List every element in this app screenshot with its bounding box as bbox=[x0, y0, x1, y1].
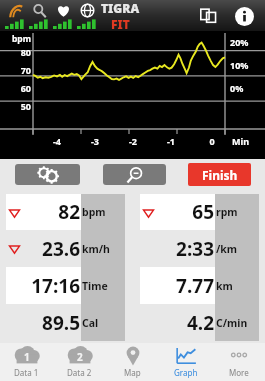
staticText: Time bbox=[82, 279, 108, 293]
staticText: bpm bbox=[82, 205, 106, 219]
button[interactable]: 7.77 bbox=[140, 267, 259, 304]
staticText: Map bbox=[124, 367, 141, 378]
staticText: rpm bbox=[216, 205, 238, 219]
staticText: 4.2 bbox=[140, 310, 214, 336]
button[interactable]: More bbox=[212, 343, 265, 381]
button[interactable]: Settings bbox=[15, 164, 80, 185]
staticText: 80 bbox=[4, 46, 31, 58]
button[interactable]: 23.6 bbox=[6, 230, 125, 267]
staticText: 10% bbox=[230, 59, 249, 71]
staticText: km/h bbox=[82, 242, 110, 256]
button[interactable]: Map bbox=[106, 343, 159, 381]
staticText: 89.5 bbox=[6, 310, 80, 336]
staticText: 23.6 bbox=[20, 236, 80, 262]
button[interactable]: 2:33 bbox=[140, 230, 259, 267]
staticText: 1 bbox=[24, 350, 30, 364]
button[interactable]: Finish bbox=[188, 163, 251, 186]
staticText: 2 bbox=[77, 350, 83, 364]
button[interactable]: Info bbox=[231, 3, 257, 29]
staticText: FIT bbox=[111, 16, 130, 31]
button[interactable]: Screen layout bbox=[195, 3, 221, 29]
staticText: 20% bbox=[230, 36, 249, 48]
staticText: -4 bbox=[47, 135, 67, 147]
staticText: More bbox=[229, 367, 249, 378]
staticText: Data 2 bbox=[67, 367, 92, 378]
staticText: TIGRA bbox=[101, 0, 140, 16]
staticText: 82 bbox=[20, 199, 80, 225]
staticText: /km bbox=[216, 242, 238, 256]
staticText: 7.77 bbox=[140, 273, 214, 299]
staticText: km bbox=[216, 279, 233, 293]
button[interactable]: 4.2 bbox=[140, 304, 259, 341]
button[interactable]: Graph bbox=[159, 343, 212, 381]
staticText: -2 bbox=[123, 135, 143, 147]
staticText: -1 bbox=[161, 135, 181, 147]
staticText: bpm bbox=[4, 33, 31, 45]
button[interactable]: Zoom out bbox=[103, 164, 166, 185]
staticText: 2:33 bbox=[140, 236, 214, 262]
staticText: 0 bbox=[202, 135, 222, 147]
staticText: 65 bbox=[154, 199, 214, 225]
button[interactable]: 1 bbox=[0, 343, 53, 381]
button[interactable]: 17:16 bbox=[6, 267, 125, 304]
button[interactable]: 89.5 bbox=[6, 304, 125, 341]
staticText: 0% bbox=[230, 82, 244, 94]
staticText: Data 1 bbox=[14, 367, 39, 378]
button[interactable]: 65 bbox=[140, 194, 259, 230]
staticText: Min bbox=[232, 135, 250, 147]
staticText: C/min bbox=[216, 316, 248, 330]
staticText: 70 bbox=[4, 64, 31, 76]
staticText: Cal bbox=[82, 316, 99, 330]
staticText: 50 bbox=[4, 100, 31, 112]
staticText: -3 bbox=[85, 135, 105, 147]
button[interactable]: 2 bbox=[53, 343, 106, 381]
staticText: Graph bbox=[174, 367, 198, 378]
button[interactable]: 82 bbox=[6, 194, 125, 230]
staticText: 17:16 bbox=[6, 273, 80, 299]
staticText: 60 bbox=[4, 82, 31, 94]
staticText: Finish bbox=[202, 167, 238, 183]
